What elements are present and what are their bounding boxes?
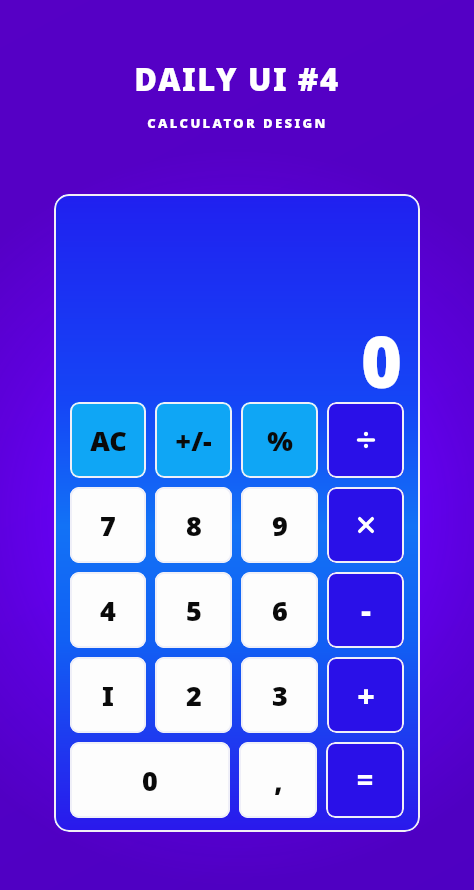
staticText: , xyxy=(274,762,283,799)
staticText: +/- xyxy=(175,422,212,459)
staticText: AC xyxy=(90,422,127,459)
staticText: DAILY UI #4 xyxy=(134,58,340,100)
staticText: 2 xyxy=(186,677,202,714)
staticText: % xyxy=(267,422,293,459)
button[interactable]: 0 xyxy=(70,742,230,818)
button[interactable]: , xyxy=(239,742,317,818)
button[interactable]: - xyxy=(327,572,404,648)
staticText: 6 xyxy=(272,592,288,629)
button[interactable]: Divide xyxy=(327,402,404,478)
button[interactable]: + xyxy=(327,657,404,733)
staticText: - xyxy=(361,590,371,631)
button[interactable]: 2 xyxy=(155,657,232,733)
button[interactable]: 3 xyxy=(241,657,318,733)
button[interactable]: 5 xyxy=(155,572,232,648)
button[interactable]: Equals xyxy=(326,742,404,818)
button[interactable]: 8 xyxy=(155,487,232,563)
staticText: 8 xyxy=(186,507,202,544)
staticText: 9 xyxy=(272,507,288,544)
button[interactable]: I xyxy=(70,657,146,733)
staticText: + xyxy=(357,675,375,716)
staticText: 5 xyxy=(186,592,202,629)
button[interactable]: 6 xyxy=(241,572,318,648)
button[interactable]: % xyxy=(241,402,318,478)
staticText: CALCULATOR DESIGN xyxy=(147,114,328,132)
staticText: 4 xyxy=(100,592,116,629)
button[interactable]: 9 xyxy=(241,487,318,563)
staticText: I xyxy=(102,677,114,714)
staticText: 0 xyxy=(360,313,402,408)
button[interactable]: AC xyxy=(70,402,146,478)
staticText: 0 xyxy=(142,762,158,799)
button[interactable]: 4 xyxy=(70,572,146,648)
staticText: 3 xyxy=(272,677,288,714)
button[interactable]: +/- xyxy=(155,402,232,478)
staticText: 7 xyxy=(100,507,116,544)
button[interactable]: 7 xyxy=(70,487,146,563)
button[interactable]: Multiply xyxy=(327,487,404,563)
